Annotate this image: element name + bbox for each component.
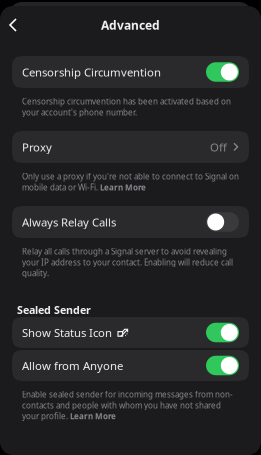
staticText: Censorship circumvention has been activa…: [22, 96, 231, 118]
staticText: Allow from Anyone: [22, 358, 123, 373]
staticText: Enable sealed sender for incoming messag…: [22, 389, 233, 422]
staticText: Show Status Icon: [22, 325, 112, 340]
button[interactable]: Back: [1, 10, 25, 40]
staticText: Relay all calls through a Signal server …: [22, 246, 233, 279]
button[interactable]: Censorship Circumvention: [12, 56, 249, 88]
staticText: Censorship Circumvention: [22, 64, 161, 80]
staticText: Sealed Sender: [17, 302, 91, 317]
staticText: Always Relay Calls: [22, 214, 116, 230]
button[interactable]: Show Status Icon: [12, 317, 249, 348]
staticText: Only use a proxy if you're not able to c…: [22, 171, 239, 193]
button[interactable]: Always Relay Calls: [12, 206, 249, 238]
button[interactable]: Proxy: [12, 131, 249, 163]
staticText: Advanced: [101, 17, 160, 33]
staticText: Off: [210, 139, 227, 155]
button[interactable]: Allow from Anyone: [12, 350, 249, 381]
staticText: Proxy: [22, 139, 52, 155]
